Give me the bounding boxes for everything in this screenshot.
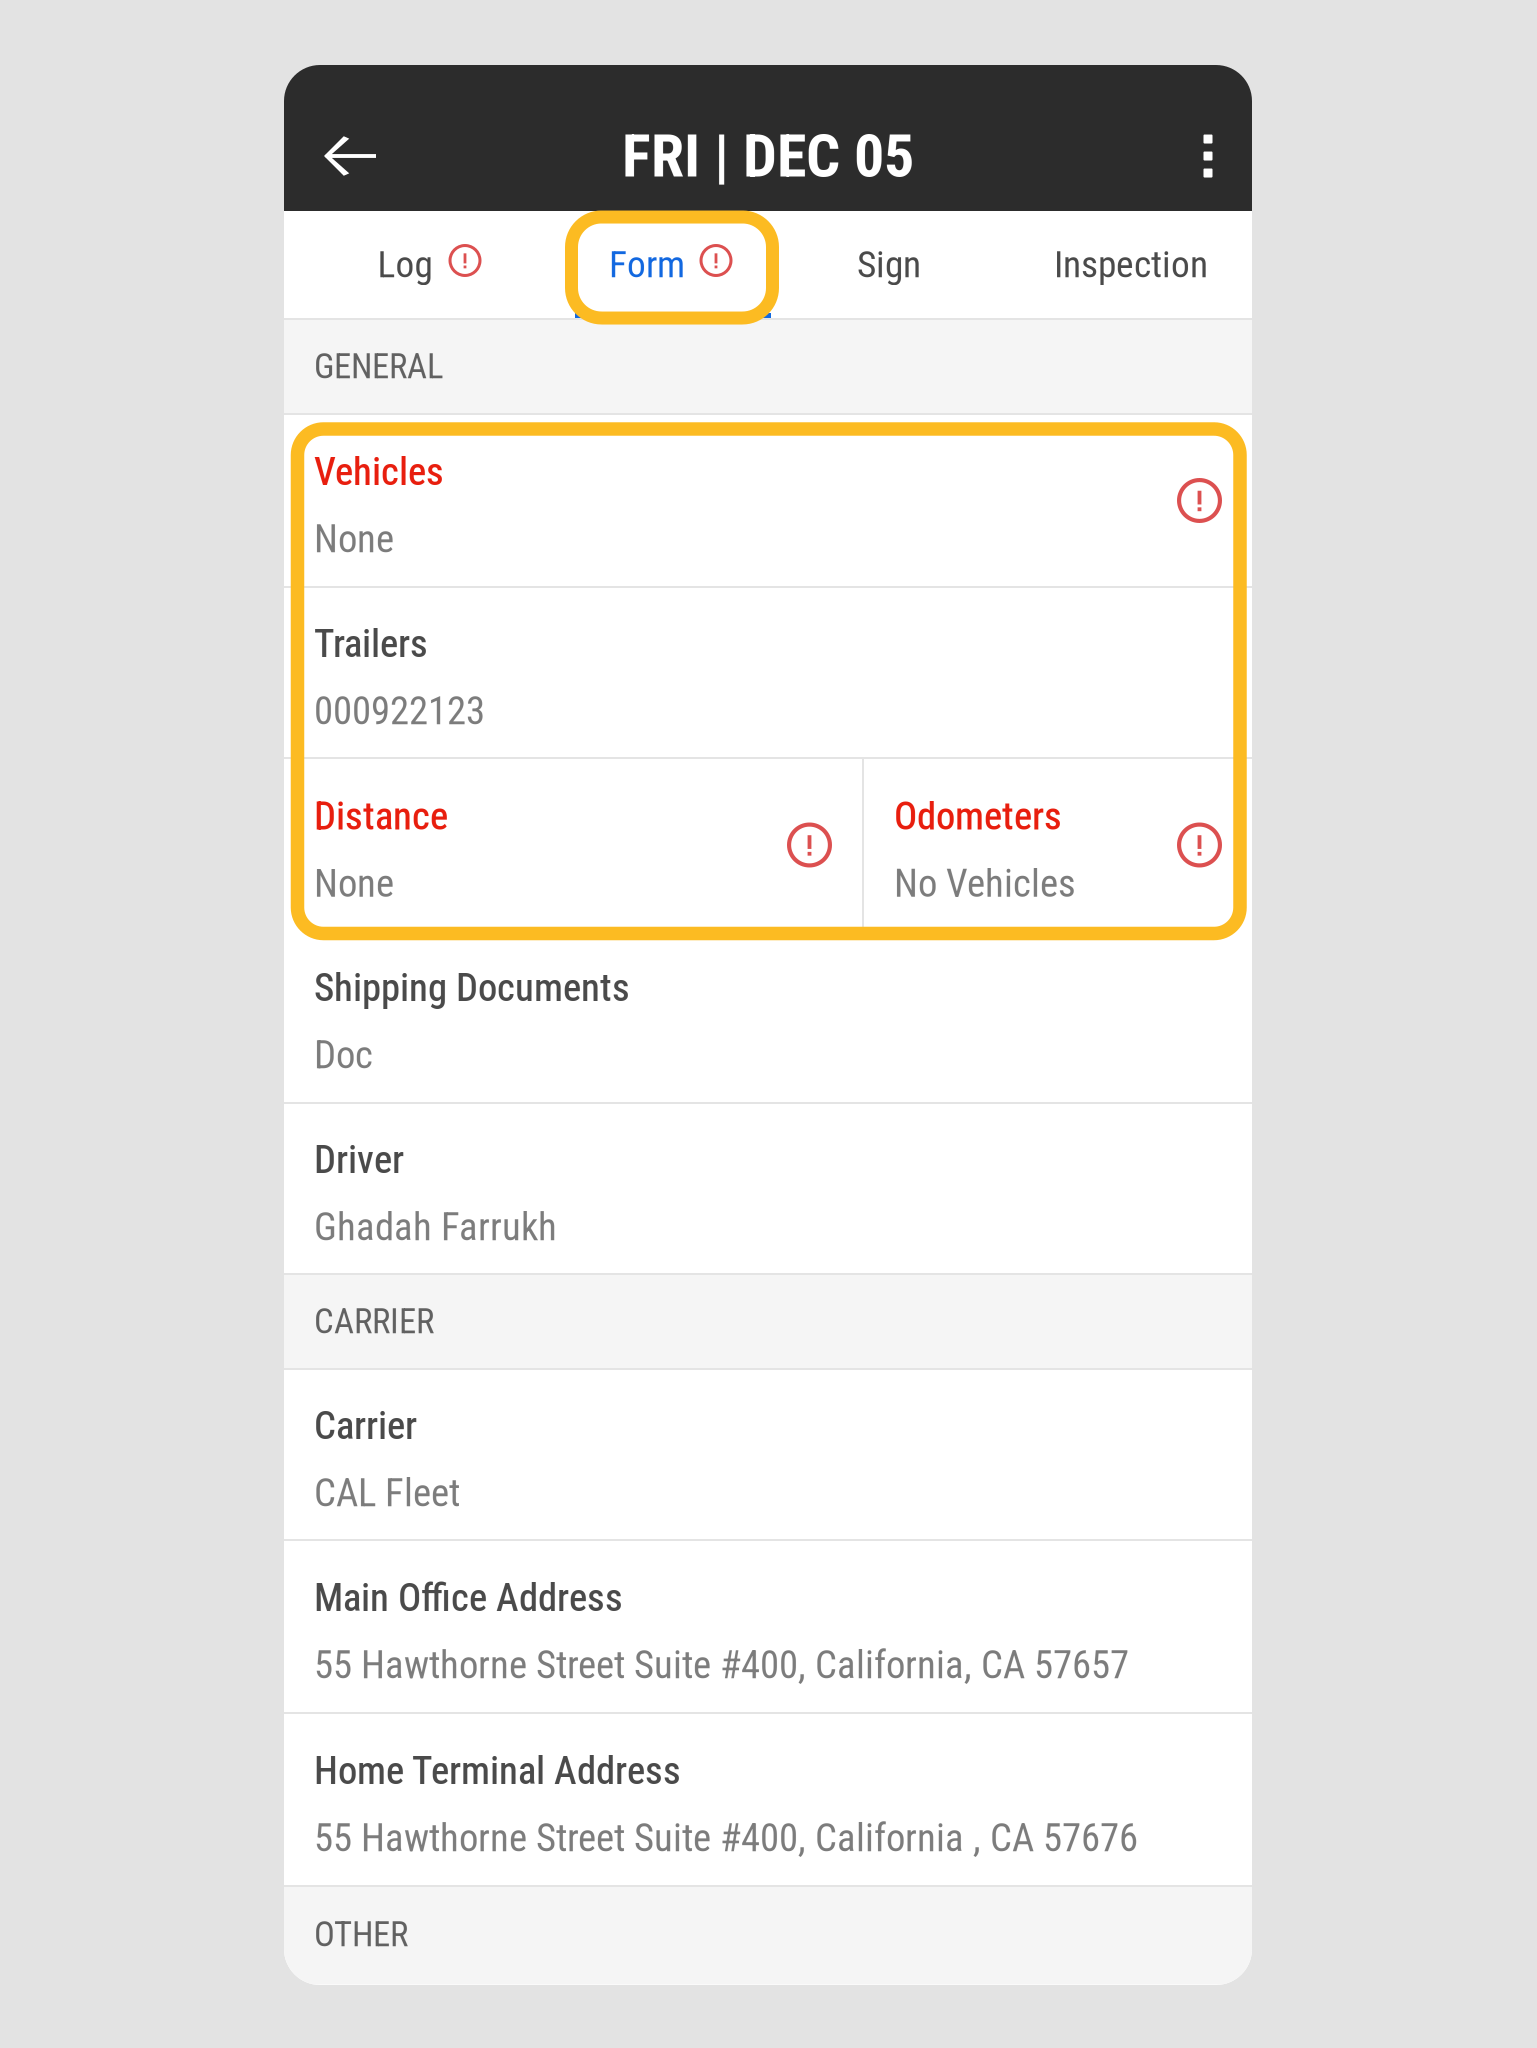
staticText: 55 Hawthorne Street Suite #400, Californ… <box>314 1815 1138 1861</box>
button[interactable]: Trailers <box>284 588 1252 757</box>
staticText: None <box>314 516 394 562</box>
staticText: Form <box>609 243 685 286</box>
staticText: Distance <box>314 794 448 839</box>
staticText: 55 Hawthorne Street Suite #400, Californ… <box>314 1642 1129 1688</box>
button[interactable]: Shipping Documents <box>284 931 1252 1102</box>
button[interactable]: More options <box>1164 108 1252 204</box>
button[interactable]: Back <box>302 108 398 204</box>
button[interactable]: Home Terminal Address <box>284 1714 1252 1885</box>
staticText: Shipping Documents <box>314 965 630 1010</box>
staticText: Ghadah Farrukh <box>314 1204 557 1250</box>
staticText: Carrier <box>314 1403 417 1448</box>
staticText: CAL Fleet <box>314 1470 460 1516</box>
staticText: Inspection <box>1054 243 1208 286</box>
staticText: Doc <box>314 1032 373 1078</box>
staticText: Odometers <box>894 794 1062 839</box>
staticText: GENERAL <box>314 346 443 387</box>
button[interactable]: Inspection <box>1010 211 1252 318</box>
button[interactable]: Log <box>284 211 526 318</box>
staticText: Driver <box>314 1137 404 1182</box>
staticText: Log <box>377 243 432 286</box>
staticText: None <box>314 861 394 906</box>
staticText: Main Office Address <box>314 1575 623 1620</box>
button[interactable]: Driver <box>284 1104 1252 1273</box>
staticText: No Vehicles <box>894 861 1076 906</box>
button[interactable]: Form <box>526 211 768 318</box>
staticText: 000922123 <box>314 688 485 734</box>
button[interactable]: Distance <box>284 759 862 931</box>
staticText: Vehicles <box>314 449 444 494</box>
staticText: CARRIER <box>314 1301 434 1342</box>
staticText: Home Terminal Address <box>314 1748 681 1793</box>
staticText: Sign <box>857 243 921 286</box>
button[interactable]: Vehicles <box>284 415 1252 586</box>
staticText: FRI | DEC 05 <box>622 121 914 191</box>
staticText: OTHER <box>314 1914 408 1955</box>
button[interactable]: Carrier <box>284 1370 1252 1539</box>
button[interactable]: Sign <box>768 211 1010 318</box>
button[interactable]: Main Office Address <box>284 1541 1252 1712</box>
button[interactable]: Odometers <box>864 759 1252 931</box>
staticText: Trailers <box>314 621 428 666</box>
